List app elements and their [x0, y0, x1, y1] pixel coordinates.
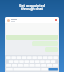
staticText: Get acquainted through chat: [2, 3, 62, 11]
button[interactable]: Keyboard: [5, 55, 59, 72]
